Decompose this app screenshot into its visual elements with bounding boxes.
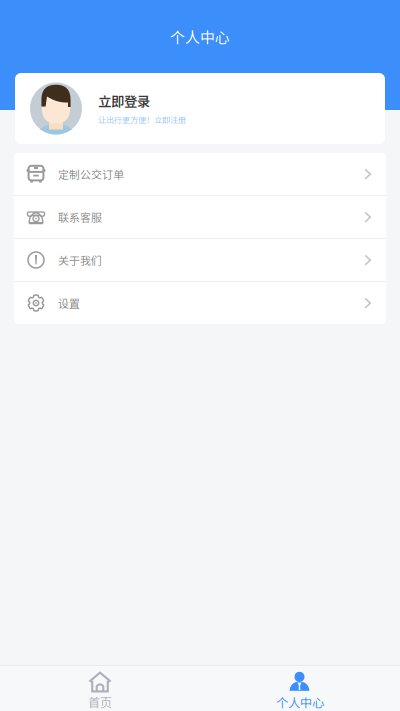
- button[interactable]: 定制公交订单: [14, 153, 386, 195]
- staticText: 联系客服: [58, 209, 102, 225]
- button[interactable]: 首页: [0, 666, 200, 711]
- button[interactable]: 联系客服: [14, 196, 386, 238]
- staticText: 首页: [88, 693, 112, 711]
- button[interactable]: 立即登录: [15, 73, 385, 144]
- staticText: 个人中心: [170, 26, 230, 48]
- staticText: 立即登录: [98, 92, 150, 111]
- staticText: 让出行更方便！立即注册: [98, 114, 186, 125]
- staticText: 关于我们: [58, 252, 102, 268]
- staticText: 个人中心: [276, 693, 324, 711]
- staticText: 设置: [58, 295, 80, 311]
- button[interactable]: 关于我们: [14, 239, 386, 281]
- staticText: 定制公交订单: [58, 166, 124, 182]
- button[interactable]: 个人中心: [200, 666, 400, 711]
- button[interactable]: 设置: [14, 282, 386, 324]
